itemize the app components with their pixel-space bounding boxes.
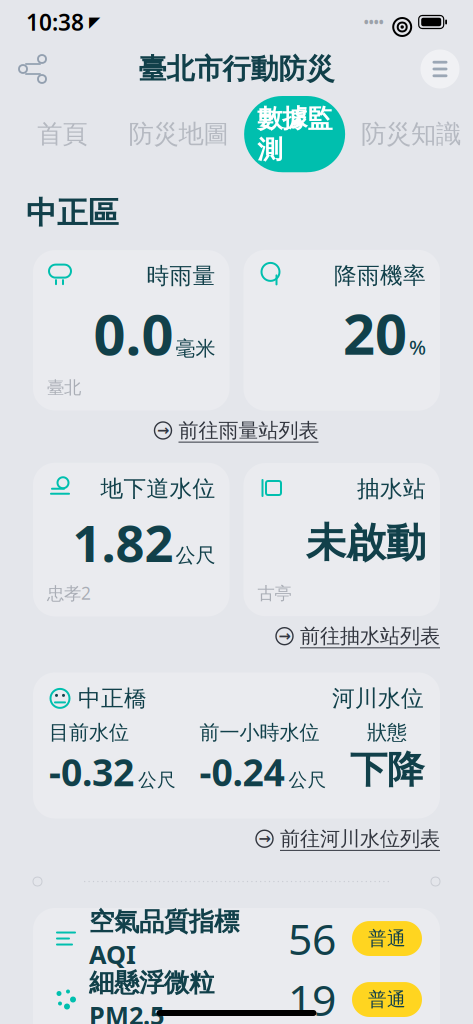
button[interactable]: → [276, 620, 440, 652]
staticText: 56 [288, 910, 336, 967]
staticText: 公尺 [288, 768, 326, 791]
staticText: 普通 [368, 927, 406, 950]
staticText: → [278, 628, 290, 644]
staticText: 公尺 [138, 768, 176, 791]
staticText: 防災地圖 [128, 119, 228, 150]
staticText: 目前水位 [49, 720, 129, 745]
staticText: 0.0 [93, 296, 173, 371]
button[interactable]: 細懸浮微粒PM2.5 [33, 969, 440, 1024]
staticText: 中正橋 [78, 684, 147, 712]
button[interactable]: 空氣品質指標AQI [33, 908, 440, 969]
button[interactable]: → [256, 822, 440, 855]
staticText: 毫米 [175, 336, 215, 361]
staticText: 狀態 [367, 720, 407, 745]
staticText: 河川水位 [332, 684, 424, 712]
staticText: 忠孝2 [47, 582, 91, 605]
staticText: 10:38 [26, 7, 84, 37]
staticText: 前往雨量站列表 [178, 418, 318, 443]
staticText: 20 [343, 296, 407, 370]
staticText: 古亭 [257, 583, 291, 604]
staticText: → [258, 830, 270, 847]
button[interactable]: 防災知識 [353, 110, 469, 159]
staticText: 地下道水位 [100, 475, 215, 503]
staticText: •••• [364, 13, 384, 31]
staticText: 下降 [350, 747, 424, 793]
staticText: % [409, 334, 426, 360]
staticText: → [157, 422, 169, 439]
staticText: 時雨量 [146, 262, 215, 290]
staticText: 空氣品質指標AQI [89, 906, 239, 971]
staticText: -0.32 [49, 747, 134, 796]
staticText: 普通 [368, 988, 406, 1011]
button[interactable]: 分享 [10, 46, 56, 92]
staticText: 抽水站 [357, 475, 426, 503]
staticText: 前一小時水位 [199, 720, 319, 745]
staticText: 1.82 [72, 509, 173, 576]
button[interactable]: 選單 [417, 46, 463, 92]
staticText: 中正區 [26, 194, 119, 232]
staticText: -0.24 [199, 747, 284, 796]
staticText: 前往河川水位列表 [280, 826, 440, 851]
staticText: 降雨機率 [334, 262, 426, 290]
button[interactable]: 首頁 [4, 110, 120, 159]
staticText: 防災知識 [361, 119, 461, 150]
staticText: 數據監測 [257, 103, 332, 165]
staticText: 前往抽水站列表 [300, 624, 440, 648]
staticText: 未啟動 [306, 518, 426, 567]
button[interactable]: 數據監測 [236, 96, 353, 172]
button[interactable]: → [154, 414, 318, 447]
staticText: 19 [288, 971, 336, 1024]
staticText: 首頁 [37, 119, 87, 150]
staticText: ◤ [89, 14, 100, 30]
button[interactable]: 防災地圖 [120, 110, 236, 159]
staticText: 公尺 [175, 543, 215, 568]
staticText: 臺北 [47, 377, 81, 398]
staticText: 細懸浮微粒PM2.5 [89, 967, 214, 1024]
staticText: 臺北市行動防災 [138, 52, 334, 86]
